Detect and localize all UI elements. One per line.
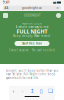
staticText: Cancel anytime · No card needed <box>9 48 55 52</box>
staticText: GOODNIGHT <box>24 14 40 17</box>
staticText: ↥ <box>30 88 34 94</box>
staticText: ⟳ <box>56 6 58 9</box>
button[interactable]: Home <box>3 13 8 18</box>
staticText: A whole new way to rest <box>15 25 48 29</box>
button[interactable]: Page settings <box>3 5 10 10</box>
staticText: ‹ <box>13 87 15 95</box>
staticText: goodnight.co <box>22 6 42 10</box>
staticText: › <box>22 87 24 95</box>
staticText: ▯ <box>40 88 43 94</box>
staticText: NEW FOR 2024 <box>22 22 42 25</box>
staticText: Sleep deeply. Wake rested. <box>13 34 51 38</box>
button[interactable]: Bookmarks <box>37 86 46 96</box>
button[interactable]: Tabs <box>46 86 55 96</box>
staticText: ▮▮▮ <box>53 1 56 4</box>
button[interactable]: Start free trial <box>14 41 49 46</box>
staticText: Start free trial <box>22 42 42 45</box>
button[interactable]: Reload <box>54 5 61 10</box>
button[interactable]: Menu <box>56 13 61 18</box>
button[interactable]: Forward <box>18 86 27 96</box>
button[interactable]: Share <box>27 86 37 96</box>
staticText: AA <box>4 6 8 10</box>
button[interactable]: Back <box>9 86 18 96</box>
staticText: ❏ <box>48 88 53 94</box>
staticText: Tonight, you'll sleep better than you ha… <box>5 69 58 80</box>
staticText: FULL NIGHT <box>16 28 47 35</box>
staticText <box>56 1 57 4</box>
staticText: 9:41 <box>3 1 10 4</box>
